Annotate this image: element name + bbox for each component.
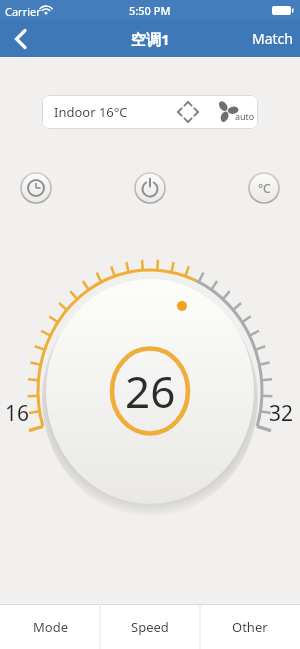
button[interactable]: Mode [0, 604, 100, 649]
staticText: 16 [5, 399, 30, 427]
staticText: 26 [125, 361, 176, 421]
staticText: Other [232, 618, 268, 636]
button[interactable]: Speed [100, 604, 200, 649]
staticText: Carrier [5, 4, 41, 19]
button[interactable]: Indoor 16°C [42, 95, 258, 129]
button[interactable]: Match [244, 20, 300, 57]
staticText: 32 [269, 399, 294, 427]
staticText: Speed [131, 618, 169, 636]
staticText: °C [258, 180, 271, 196]
button[interactable] [18, 170, 54, 206]
button[interactable]: Other [200, 604, 300, 649]
button[interactable] [132, 170, 168, 206]
staticText: Mode [33, 618, 68, 636]
button[interactable] [4, 22, 38, 56]
button[interactable] [246, 170, 282, 206]
staticText: 空调1 [131, 29, 170, 49]
staticText: Indoor 16°C [54, 103, 128, 121]
staticText: Match [252, 29, 293, 48]
staticText: 5:50 PM [129, 3, 171, 18]
staticText: auto [235, 110, 255, 122]
